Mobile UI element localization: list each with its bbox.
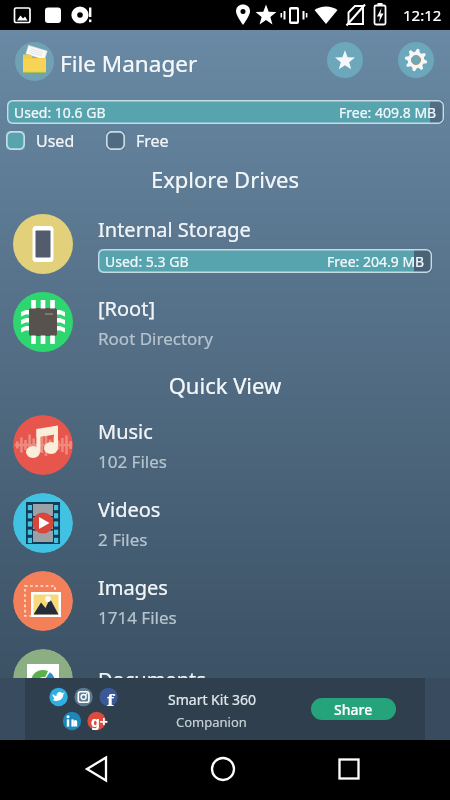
staticText: f bbox=[107, 688, 114, 711]
staticText: 1714 Files bbox=[98, 606, 177, 629]
button[interactable]: Documents bbox=[0, 640, 450, 718]
button[interactable]: Back bbox=[60, 740, 140, 800]
staticText: Documents bbox=[98, 666, 206, 693]
button[interactable]: Music bbox=[0, 406, 450, 484]
staticText: Used bbox=[36, 130, 75, 151]
staticText: [Root] bbox=[98, 295, 156, 322]
button[interactable]: Toggle bbox=[6, 131, 25, 150]
staticText: File Manager bbox=[60, 48, 198, 79]
button[interactable]: Recents bbox=[309, 740, 389, 800]
button[interactable]: Home bbox=[183, 740, 263, 800]
staticText: 102 Files bbox=[98, 450, 167, 473]
staticText: Root Directory bbox=[98, 327, 214, 350]
staticText: Internal Storage bbox=[98, 216, 251, 243]
staticText: Free: 409.8 MB bbox=[339, 103, 437, 122]
button[interactable]: Images bbox=[0, 562, 450, 640]
button[interactable]: Videos bbox=[0, 484, 450, 562]
staticText: Used: 10.6 GB bbox=[14, 103, 106, 122]
button[interactable]: [Root] bbox=[0, 283, 450, 361]
staticText: Quick View bbox=[0, 370, 450, 400]
staticText: Share bbox=[334, 700, 373, 719]
staticText: Videos bbox=[98, 496, 161, 523]
staticText: Free bbox=[136, 130, 169, 151]
staticText: Companion bbox=[176, 713, 247, 731]
staticText: Smart Kit 360 bbox=[168, 690, 257, 709]
button[interactable]: Toggle bbox=[106, 131, 125, 150]
staticText: Explore Drives bbox=[0, 164, 450, 194]
staticText: 12:12 bbox=[403, 5, 442, 25]
button[interactable]: Share bbox=[311, 698, 396, 720]
staticText: Free: 204.9 MB bbox=[327, 252, 425, 271]
staticText: Used: 5.3 GB bbox=[105, 252, 189, 271]
staticText: Music bbox=[98, 418, 153, 445]
staticText: 2 Files bbox=[98, 528, 148, 551]
staticText: Images bbox=[98, 574, 168, 601]
button[interactable]: Favorites bbox=[327, 42, 363, 78]
staticText: g+ bbox=[91, 712, 108, 731]
button[interactable]: Settings bbox=[398, 42, 434, 78]
button[interactable]: Internal Storage bbox=[0, 205, 450, 283]
